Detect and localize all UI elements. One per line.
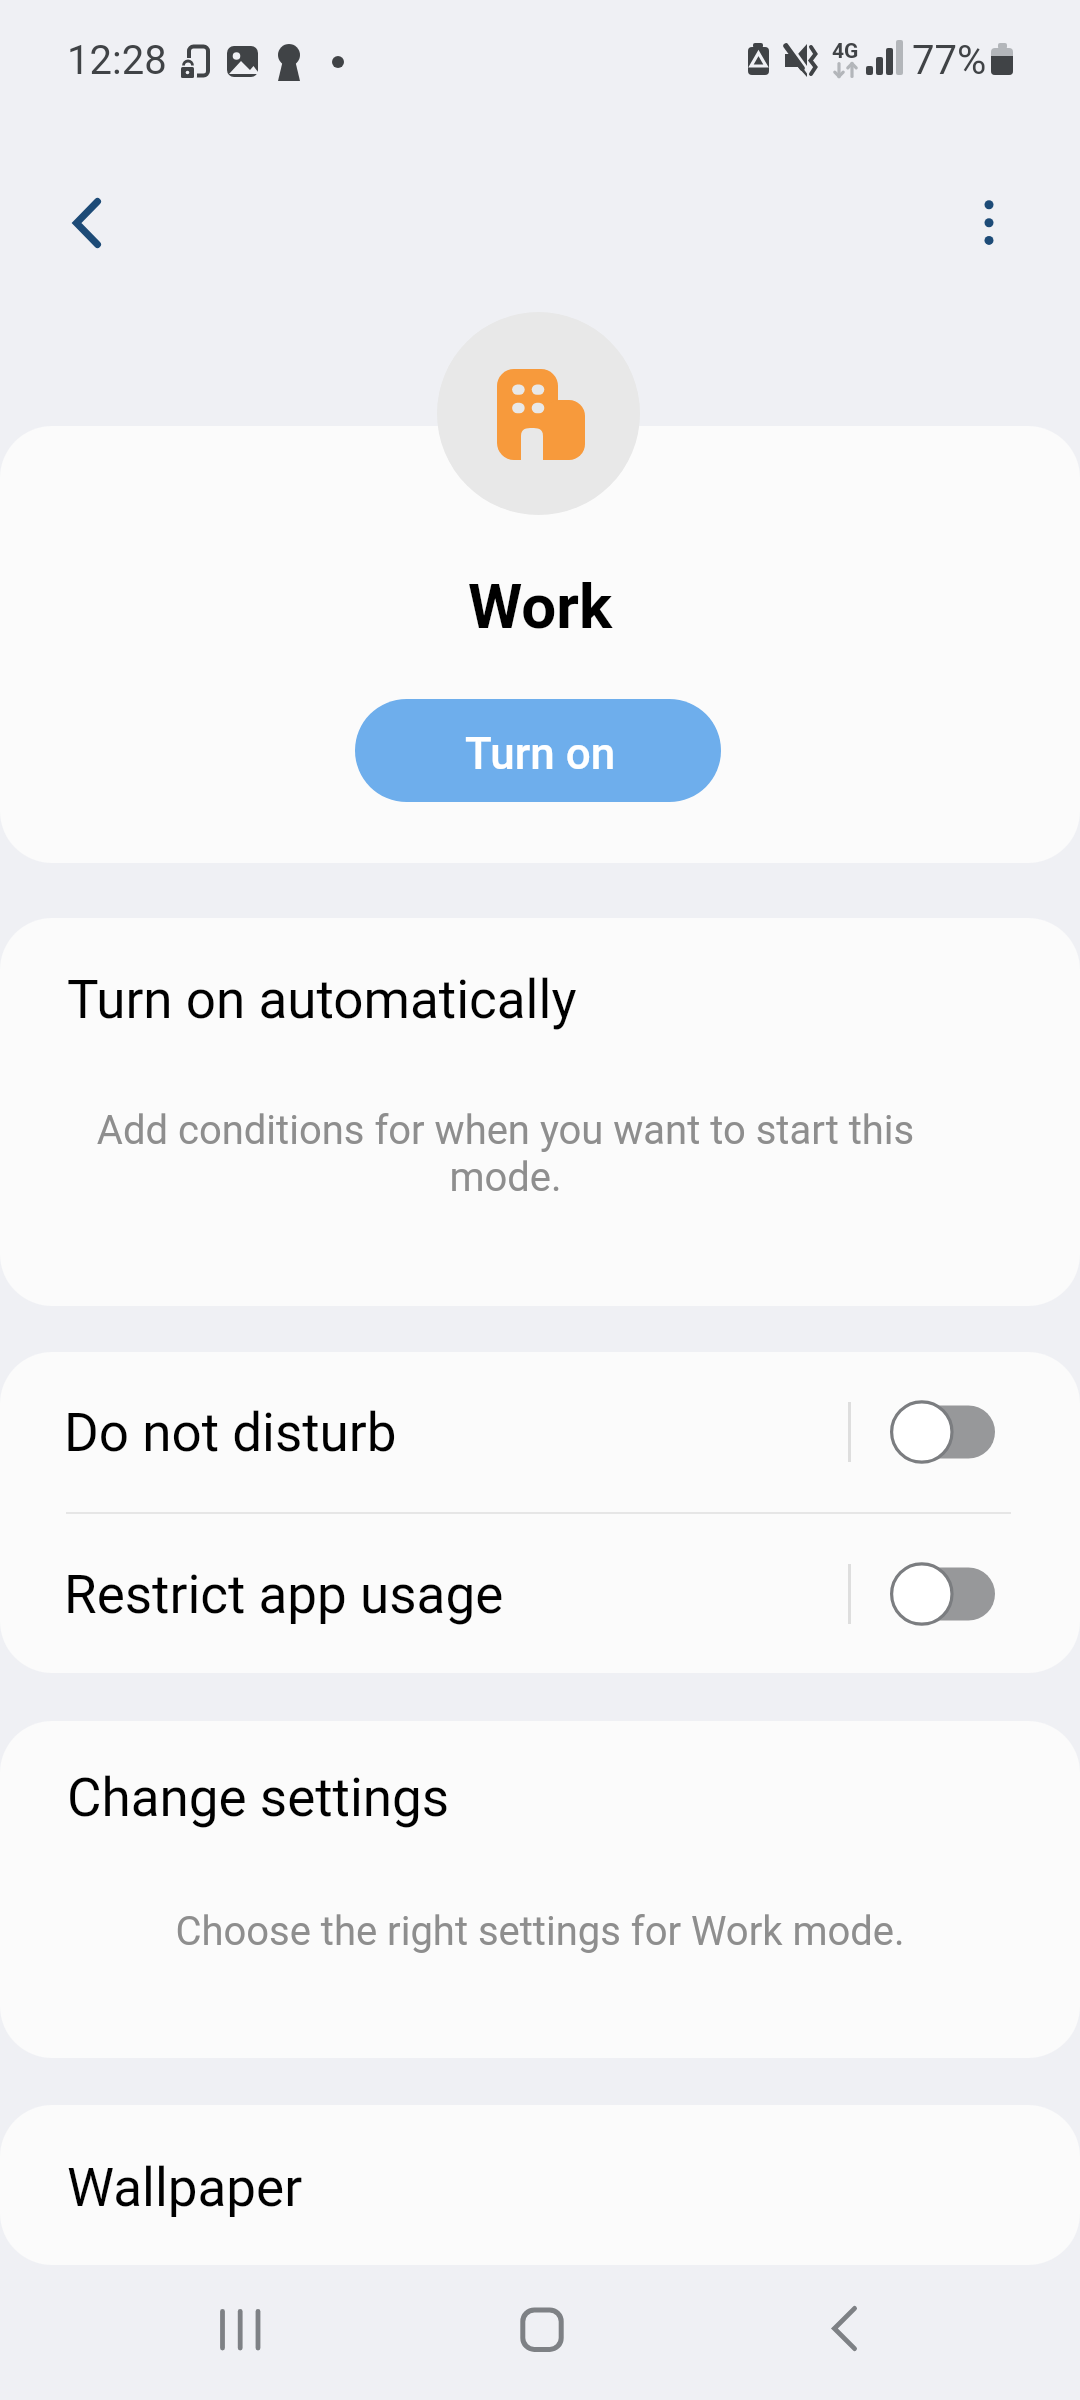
- staticText: Turn on: [465, 728, 616, 780]
- staticText: 12:28: [67, 37, 167, 84]
- staticText: Wallpaper: [67, 2157, 303, 2219]
- button[interactable]: Home: [470, 2265, 610, 2400]
- staticText: Choose the right settings for Work mode.: [0, 1908, 1080, 1955]
- button[interactable]: Recent apps: [170, 2265, 310, 2400]
- button[interactable]: Do not disturb: [0, 1352, 1080, 1512]
- button[interactable]: Navigate up: [39, 175, 135, 271]
- button[interactable]: Back: [772, 2265, 912, 2400]
- staticText: Turn on automatically: [67, 969, 577, 1031]
- button[interactable]: Restrict app usage: [0, 1514, 1080, 1673]
- staticText: Change settings: [67, 1767, 450, 1829]
- staticText: 4G: [832, 39, 859, 64]
- staticText: 77%: [912, 37, 987, 84]
- staticText: Add conditions for when you want to star…: [69, 1107, 942, 1201]
- staticText: Do not disturb: [64, 1402, 397, 1464]
- button[interactable]: Turn on: [355, 699, 721, 802]
- staticText: Restrict app usage: [64, 1564, 504, 1626]
- staticText: Work: [0, 570, 1080, 643]
- button[interactable]: More options: [940, 175, 1036, 271]
